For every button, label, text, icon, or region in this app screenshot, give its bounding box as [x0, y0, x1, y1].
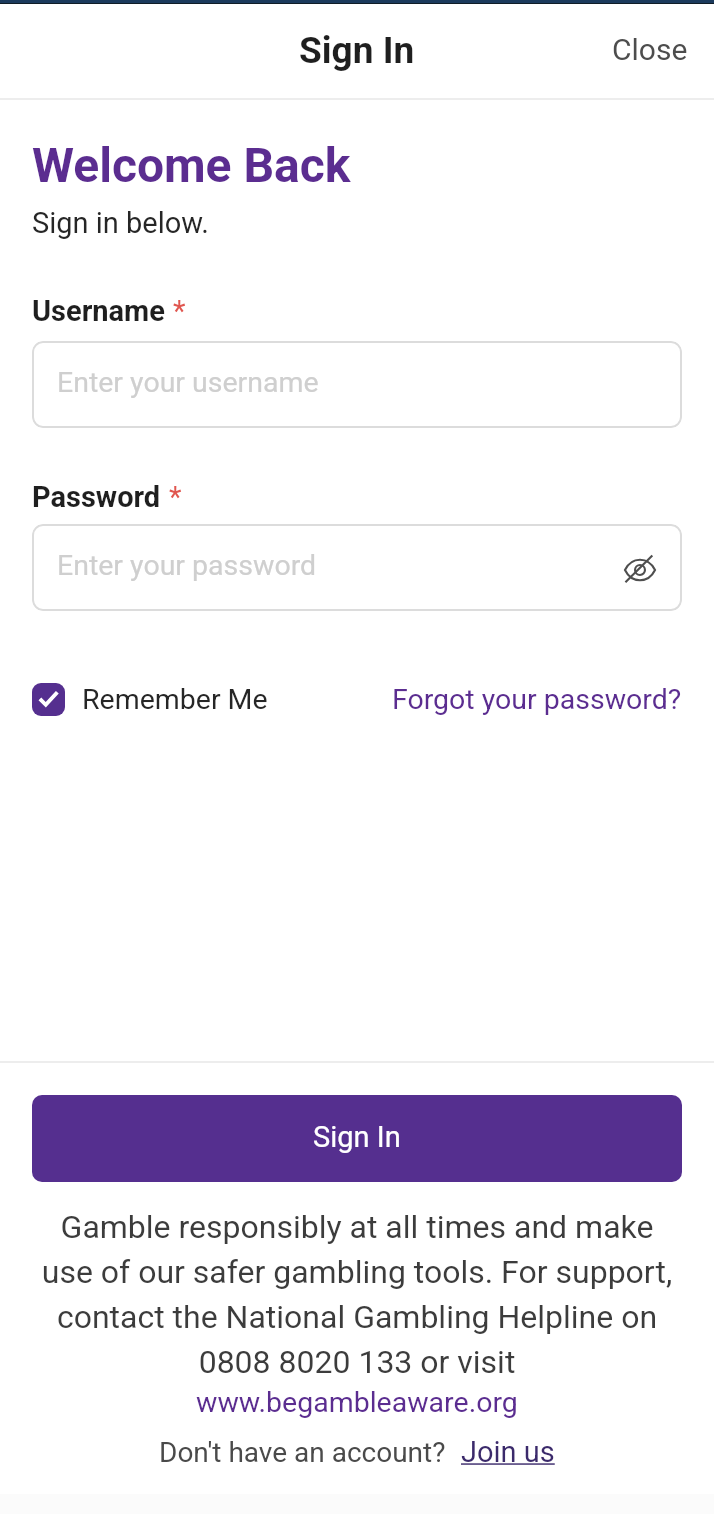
button[interactable]: Close — [586, 14, 714, 85]
button[interactable]: Remember Me — [32, 683, 268, 716]
staticText: Password — [32, 480, 161, 514]
staticText: Don't have an account? — [159, 1436, 446, 1469]
staticText: Forgot your password? — [392, 683, 682, 716]
staticText: Sign in below. — [32, 206, 209, 240]
staticText: Sign In — [299, 29, 415, 72]
button[interactable]: Sign In — [32, 1095, 682, 1182]
staticText: * — [173, 294, 186, 328]
staticText: Remember Me — [82, 683, 268, 716]
staticText: Sign In — [313, 1120, 401, 1154]
staticText: Enter your password — [57, 549, 317, 582]
staticText: Gamble responsibly at all times and make… — [32, 1208, 682, 1380]
button[interactable]: Forgot your password? — [392, 683, 682, 716]
staticText: * — [169, 480, 182, 514]
button[interactable]: Enter your password — [32, 524, 682, 611]
staticText: Username — [32, 294, 165, 328]
staticText: Close — [612, 32, 688, 67]
staticText: Enter your username — [57, 366, 319, 399]
staticText: www.begambleaware.org — [196, 1386, 518, 1419]
staticText: Welcome Back — [32, 137, 351, 193]
button[interactable]: Show password — [613, 543, 667, 597]
button[interactable]: www.begambleaware.org — [0, 1380, 714, 1424]
button[interactable]: Enter your username — [32, 341, 682, 428]
button[interactable]: Join us — [461, 1435, 555, 1469]
staticText: Join us — [461, 1435, 555, 1469]
